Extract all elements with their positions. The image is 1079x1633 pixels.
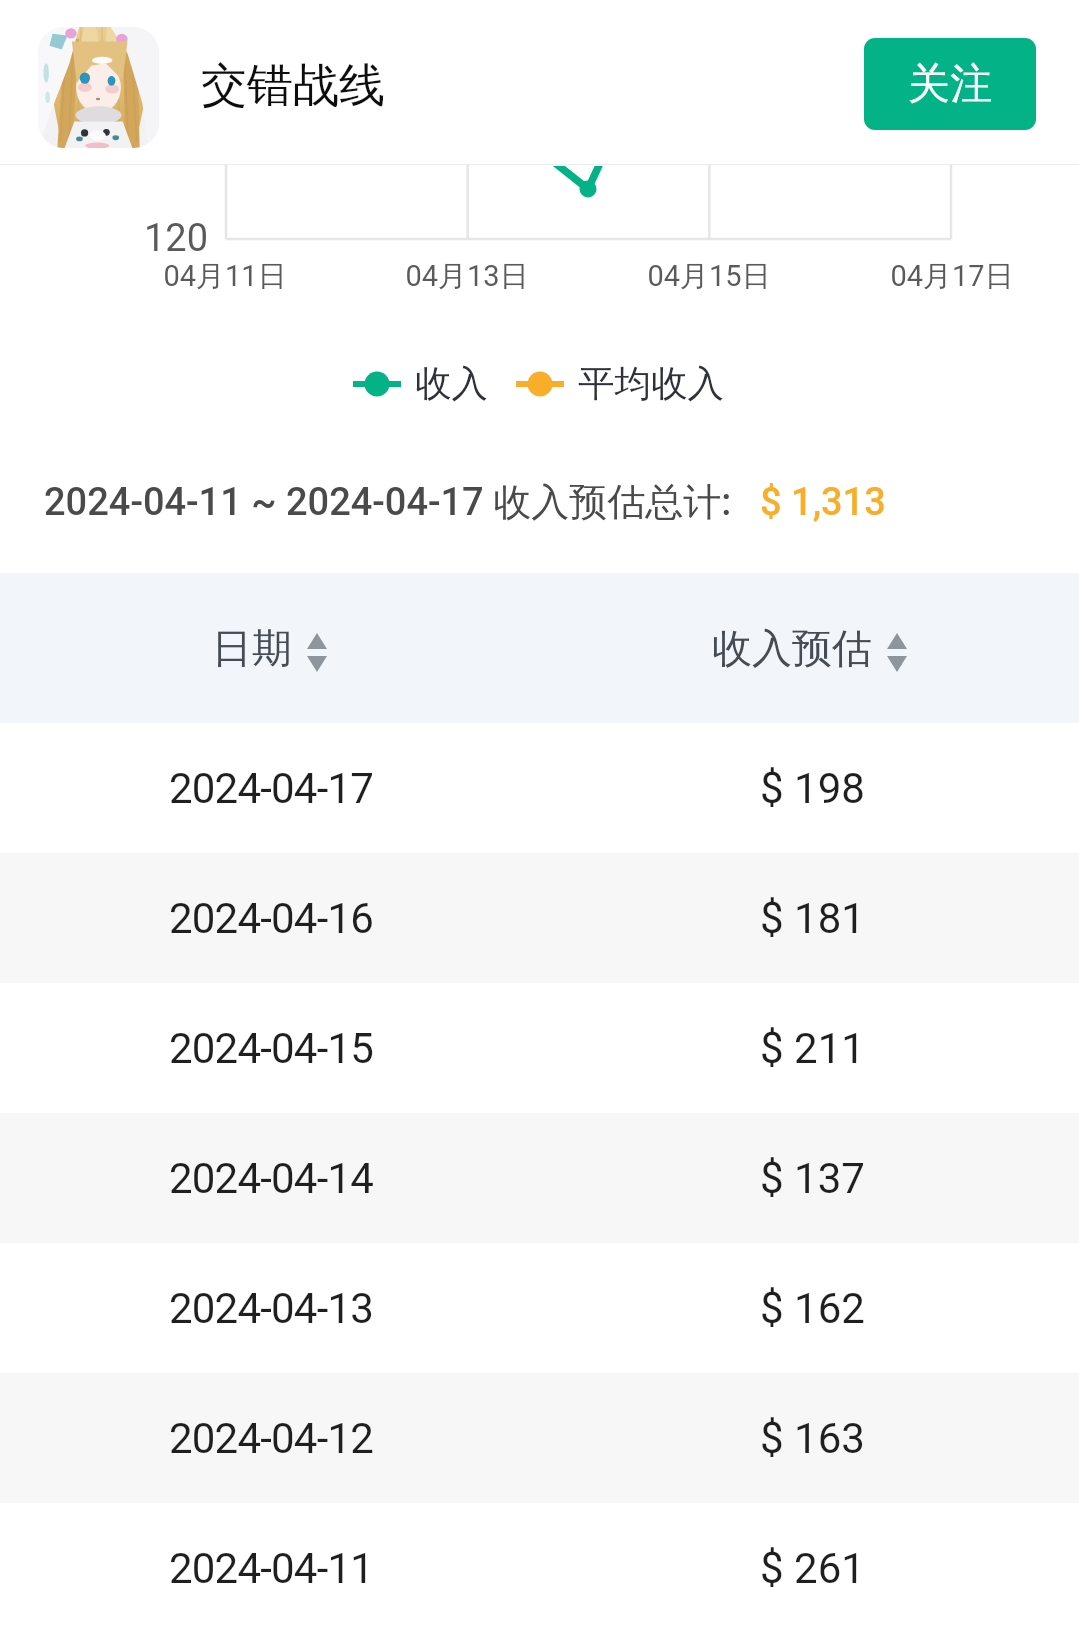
staticText: $ 261 <box>760 1544 865 1593</box>
staticText: 平均收入 <box>578 361 724 407</box>
button[interactable]: 关注 <box>864 38 1036 130</box>
staticText: 2024-04-16 <box>169 894 374 943</box>
button[interactable]: 日期 <box>0 573 539 723</box>
button[interactable]: 平均收入 <box>516 361 724 407</box>
button[interactable]: App icon 交错战线 <box>38 27 159 148</box>
staticText: 04月17日 <box>862 258 1042 295</box>
staticText: 日期 <box>212 623 292 673</box>
staticText: $ 162 <box>760 1284 865 1333</box>
staticText: 04月15日 <box>619 258 799 295</box>
staticText: 收入 <box>415 361 488 407</box>
staticText: 关注 <box>908 58 992 111</box>
staticText: 04月11日 <box>135 258 315 295</box>
staticText: 2024-04-15 <box>169 1024 374 1073</box>
button[interactable]: 2024-04-12 <box>0 1373 1079 1503</box>
button[interactable]: 2024-04-16 <box>0 853 1079 983</box>
staticText: 2024-04-11 <box>169 1544 374 1593</box>
staticText: $ 181 <box>760 894 865 943</box>
staticText: 2024-04-11 ~ 2024-04-17 收入预估总计: <box>44 478 732 526</box>
staticText: 收入预估 <box>712 623 872 673</box>
staticText: 2024-04-17 <box>169 764 374 813</box>
button[interactable]: 收入 <box>353 361 488 407</box>
button[interactable]: 2024-04-17 <box>0 723 1079 853</box>
staticText: $ 198 <box>760 764 865 813</box>
staticText: 2024-04-14 <box>169 1154 374 1203</box>
staticText: $ 163 <box>760 1414 865 1463</box>
staticText: $ 137 <box>760 1154 865 1203</box>
button[interactable]: 2024-04-11 <box>0 1503 1079 1633</box>
staticText: 交错战线 <box>201 57 385 115</box>
button[interactable]: 收入预估 <box>539 573 1079 723</box>
staticText: $ 211 <box>760 1024 865 1073</box>
staticText: 120 <box>144 216 209 261</box>
staticText: 2024-04-13 <box>169 1284 374 1333</box>
button[interactable]: 2024-04-15 <box>0 983 1079 1113</box>
staticText: 2024-04-12 <box>169 1414 374 1463</box>
staticText: 04月13日 <box>377 258 557 295</box>
button[interactable]: 2024-04-13 <box>0 1243 1079 1373</box>
staticText: $ 1,313 <box>760 480 886 525</box>
button[interactable]: 2024-04-14 <box>0 1113 1079 1243</box>
